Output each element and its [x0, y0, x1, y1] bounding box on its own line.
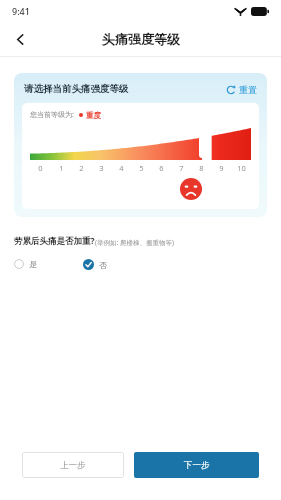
staticText: 请选择当前头痛强度等级 [24, 83, 129, 95]
staticText: 您当前等级为: [30, 110, 74, 120]
staticText: 10 [237, 163, 246, 173]
button[interactable]: 下一步 [134, 452, 259, 478]
staticText: 2 [79, 163, 84, 173]
staticText: 4 [119, 163, 124, 173]
staticText: 5 [139, 163, 144, 173]
staticText: 劳累后头痛是否加重? [14, 235, 95, 247]
staticText: 6 [159, 163, 164, 173]
staticText: 8 [199, 163, 204, 173]
button[interactable]: Back [6, 25, 34, 53]
staticText: 1 [59, 163, 64, 173]
staticText: 否 [99, 260, 107, 270]
staticText: (举例如: 爬楼梯、搬重物等) [95, 238, 174, 247]
staticText: 9 [219, 163, 224, 173]
staticText: 0 [38, 163, 43, 173]
staticText: 7 [179, 163, 184, 173]
staticText: 是 [29, 259, 37, 269]
staticText: 头痛强度等级 [102, 31, 180, 47]
button[interactable]: 是 [14, 259, 37, 269]
staticText: 9:41 [12, 5, 30, 17]
button[interactable]: 上一步 [22, 452, 124, 478]
staticText: 下一步 [184, 460, 210, 471]
button[interactable]: Intensity slider thumb [199, 126, 205, 158]
staticText: 3 [99, 163, 104, 173]
button[interactable]: 否 [83, 259, 107, 270]
staticText: 上一步 [60, 460, 86, 471]
staticText: 重度 [86, 111, 101, 120]
staticText: 重置 [239, 84, 257, 95]
button[interactable]: 重置 [226, 84, 257, 95]
